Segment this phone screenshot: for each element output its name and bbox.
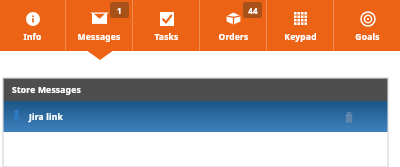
button[interactable]: Info [0, 0, 65, 51]
staticText: 1 [117, 5, 122, 16]
staticText: Goals [355, 31, 380, 43]
button[interactable]: Goals [334, 0, 400, 51]
staticText: Messages [77, 31, 121, 43]
staticText: Orders [218, 31, 249, 43]
button[interactable]: Delete message [338, 106, 360, 128]
staticText: Jira link [29, 111, 63, 123]
button[interactable]: Store Messages [3, 78, 388, 101]
staticText: Info [23, 31, 42, 43]
button[interactable]: Jira link [3, 101, 388, 132]
staticText: 44 [248, 5, 258, 16]
button[interactable]: Tasks [133, 0, 199, 51]
button[interactable]: Messages [66, 0, 132, 51]
staticText: Tasks [154, 31, 179, 43]
staticText: Store Messages [12, 84, 81, 96]
button[interactable]: Orders [200, 0, 266, 51]
button[interactable]: Keypad [267, 0, 333, 51]
staticText: Keypad [284, 31, 317, 43]
